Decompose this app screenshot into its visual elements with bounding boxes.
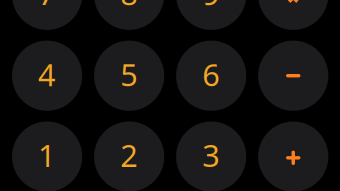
staticText: 3 xyxy=(202,135,220,175)
staticText: 4 xyxy=(38,54,56,95)
staticText: 5 xyxy=(120,54,138,95)
button[interactable]: Add xyxy=(258,121,328,191)
button[interactable]: 4 xyxy=(12,41,82,111)
staticText: 9 xyxy=(202,0,220,14)
staticText: 7 xyxy=(38,0,56,14)
staticText: 8 xyxy=(120,0,138,14)
button[interactable]: 8 xyxy=(94,0,164,30)
button[interactable]: 2 xyxy=(94,121,164,191)
button[interactable]: 7 xyxy=(12,0,82,30)
button[interactable]: 6 xyxy=(176,41,246,111)
staticText: 6 xyxy=(202,54,220,95)
button[interactable]: 1 xyxy=(12,121,82,191)
staticText: 1 xyxy=(38,135,56,175)
button[interactable]: 3 xyxy=(176,121,246,191)
button[interactable]: Multiply xyxy=(258,0,328,30)
staticText: 2 xyxy=(120,135,138,175)
button[interactable]: 5 xyxy=(94,41,164,111)
button[interactable]: Subtract xyxy=(258,41,328,111)
button[interactable]: 9 xyxy=(176,0,246,30)
